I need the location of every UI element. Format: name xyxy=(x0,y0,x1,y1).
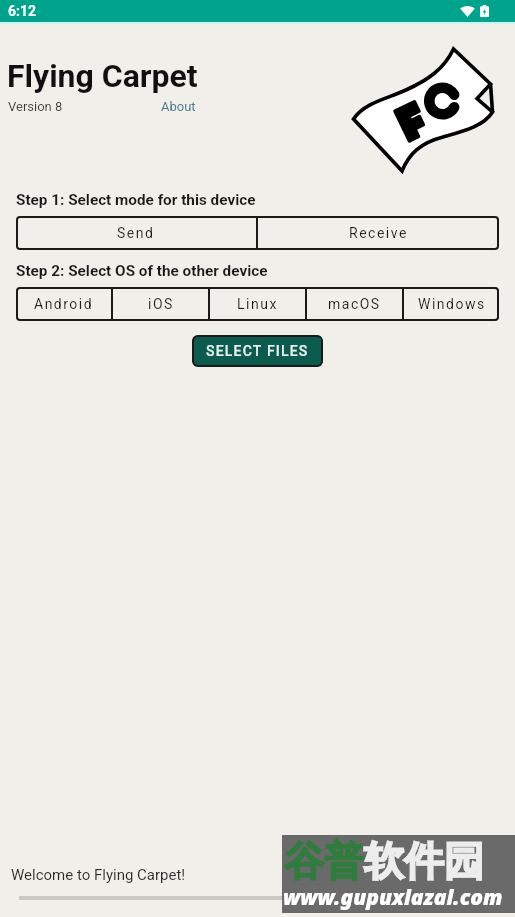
button[interactable]: Linux xyxy=(210,287,305,321)
button[interactable]: Android xyxy=(16,287,111,321)
staticText: Send xyxy=(117,225,155,241)
staticText: 6:12 xyxy=(8,3,37,19)
button[interactable]: Send xyxy=(16,216,256,250)
staticText: Version 8 xyxy=(8,99,63,114)
staticText: Android xyxy=(34,296,94,312)
staticText: Linux xyxy=(237,296,278,312)
button[interactable]: About xyxy=(161,99,196,114)
staticText: macOS xyxy=(328,296,381,312)
staticText: SELECT FILES xyxy=(206,343,309,359)
button[interactable]: iOS xyxy=(113,287,208,321)
other: Wifi signal xyxy=(460,5,475,17)
button[interactable]: SELECT FILES xyxy=(192,335,323,367)
button[interactable]: Receive xyxy=(258,216,499,250)
staticText: About xyxy=(161,99,196,114)
staticText: 谷普 xyxy=(284,836,364,886)
staticText: Receive xyxy=(349,225,408,241)
other: Battery xyxy=(480,5,489,17)
staticText: Step 1: Select mode for this device xyxy=(16,191,256,209)
staticText: Flying Carpet xyxy=(7,57,198,95)
staticText: Step 2: Select OS of the other device xyxy=(16,262,268,280)
staticText: Welcome to Flying Carpet! xyxy=(11,866,186,884)
button[interactable]: macOS xyxy=(307,287,402,321)
staticText: Windows xyxy=(418,296,486,312)
button[interactable]: Windows xyxy=(404,287,499,321)
staticText: www.gupuxlazal.com xyxy=(283,883,503,912)
staticText: 软件园 xyxy=(364,836,484,886)
staticText: iOS xyxy=(148,296,174,312)
